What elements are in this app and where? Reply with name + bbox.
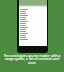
button[interactable]	[19, 18, 47, 20]
button[interactable]	[19, 32, 47, 34]
button[interactable]	[19, 30, 47, 32]
button[interactable]	[19, 26, 47, 28]
button[interactable]	[19, 8, 47, 10]
button[interactable]	[19, 14, 47, 16]
button[interactable]	[19, 20, 47, 22]
button[interactable]	[19, 10, 47, 12]
button[interactable]	[19, 22, 47, 24]
button[interactable]	[19, 38, 47, 40]
button[interactable]	[19, 16, 47, 18]
button[interactable]	[19, 34, 47, 36]
button[interactable]	[19, 12, 47, 14]
button[interactable]	[19, 24, 47, 26]
staticText: Free and open-source reader with a usage…	[3, 53, 61, 65]
button[interactable]	[19, 28, 47, 30]
button[interactable]	[19, 36, 47, 38]
